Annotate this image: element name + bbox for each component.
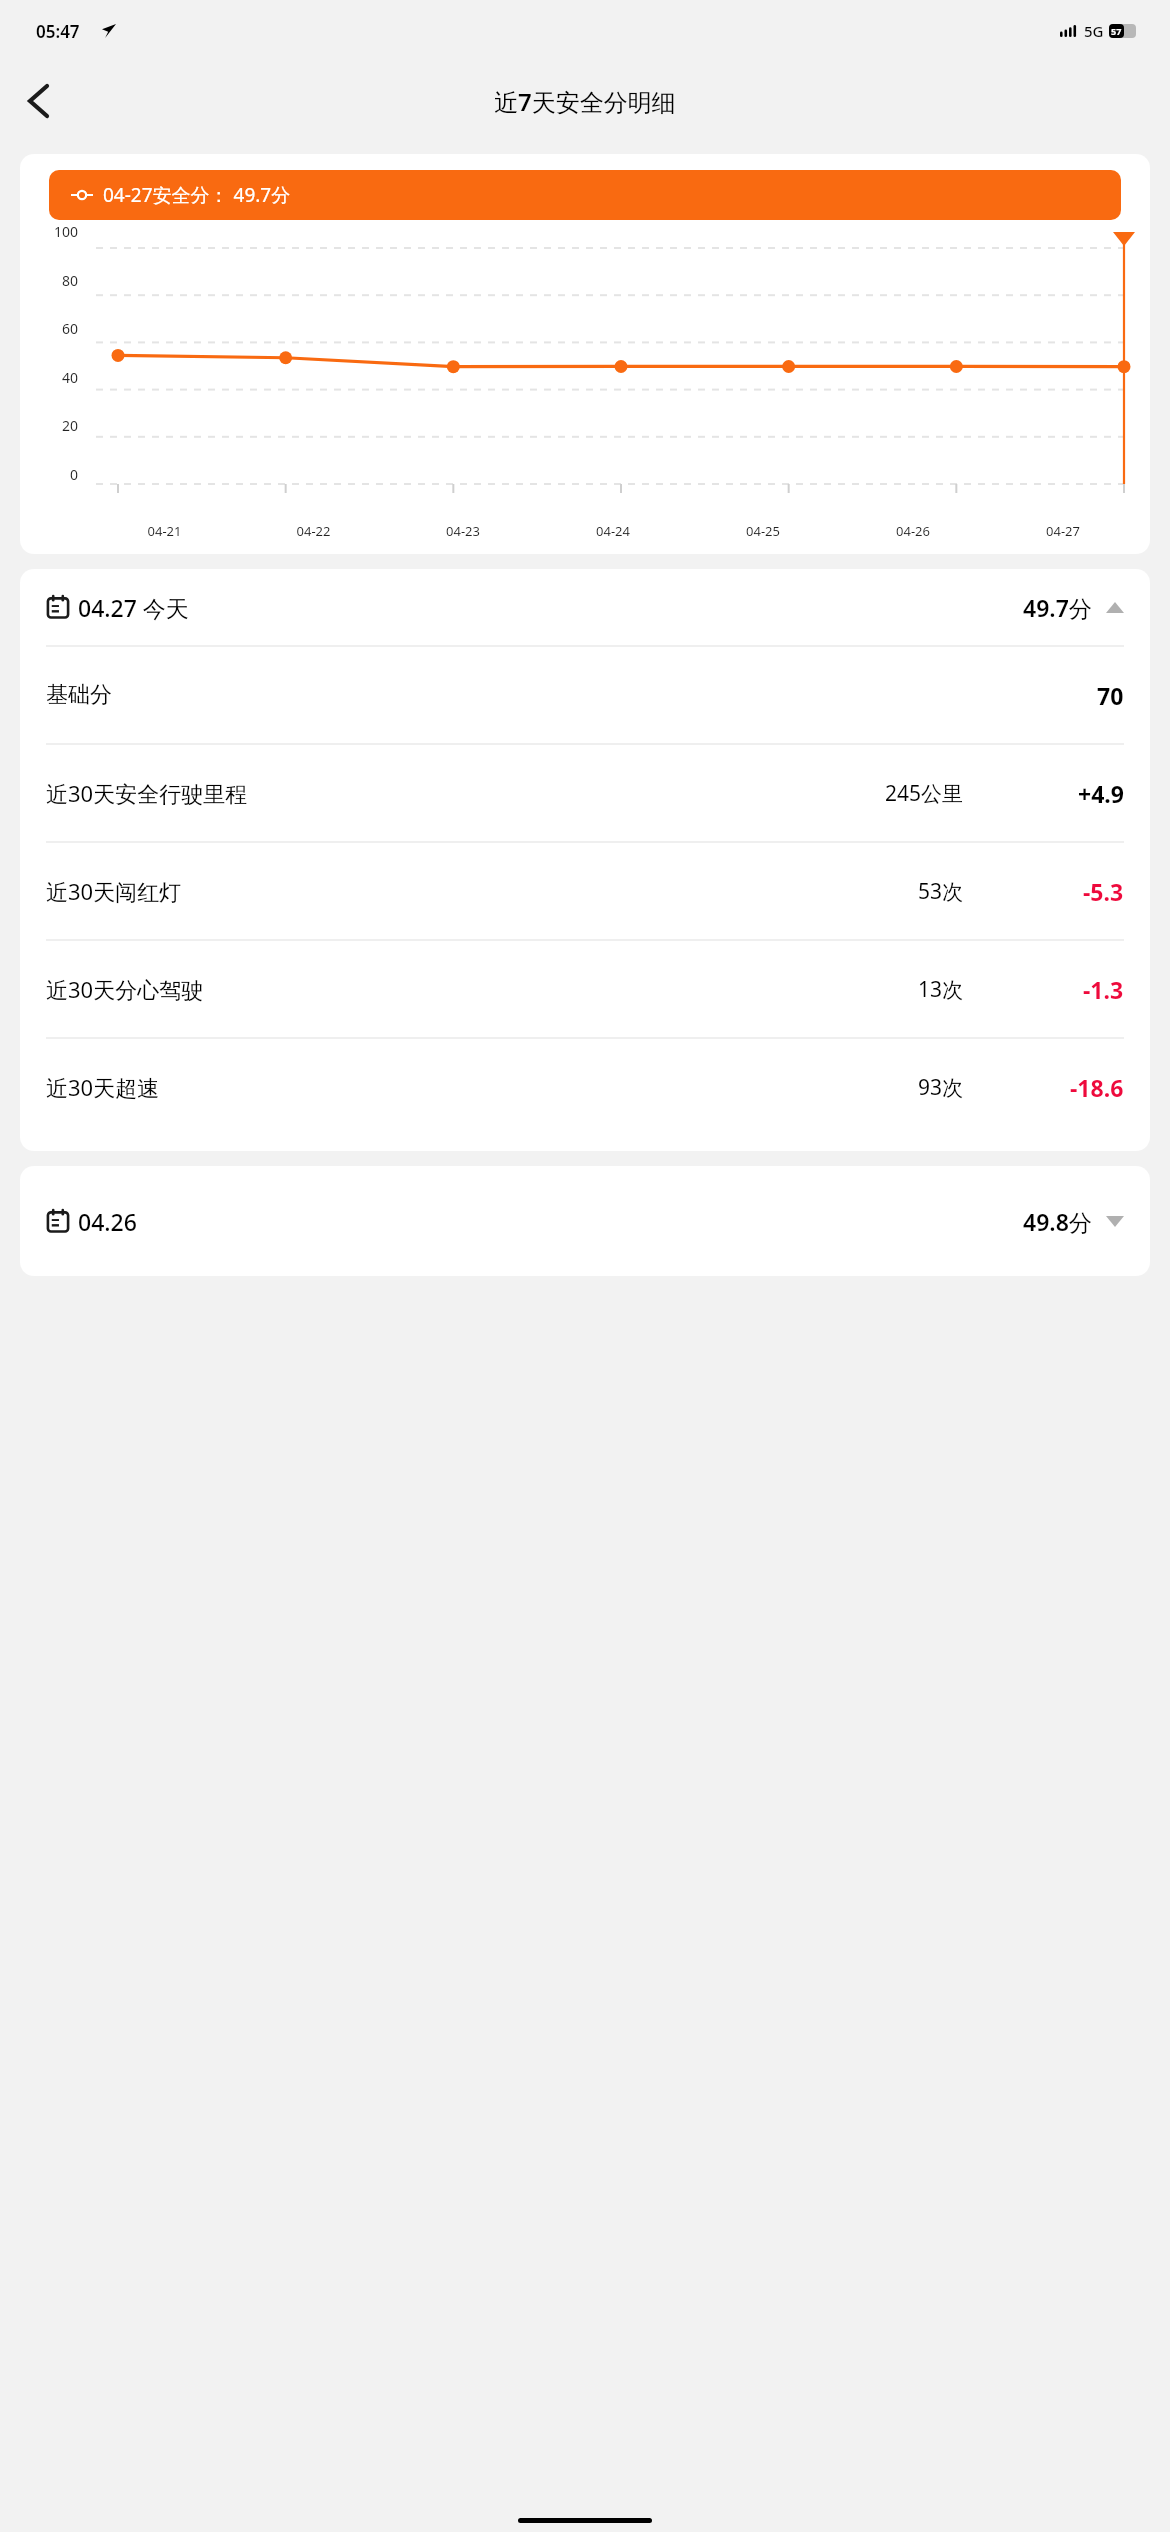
staticText: 13次 xyxy=(918,975,964,1004)
staticText: -18.6 xyxy=(1070,1072,1124,1103)
staticText: -1.3 xyxy=(1083,974,1124,1005)
staticText: 49.8分 xyxy=(1023,1206,1092,1237)
button[interactable]: 基础分 xyxy=(20,647,1150,743)
button[interactable]: 近30天超速 xyxy=(20,1039,1150,1135)
staticText: 04-27 xyxy=(988,522,1138,540)
staticText: 20 xyxy=(30,416,78,435)
staticText: -5.3 xyxy=(1083,876,1124,907)
staticText: 0 xyxy=(30,465,78,484)
staticText: 04.27 今天 xyxy=(78,592,189,623)
button[interactable]: Back xyxy=(12,75,64,127)
staticText: 100 xyxy=(30,222,78,241)
staticText: 05:47 xyxy=(36,20,80,43)
staticText: 基础分 xyxy=(46,681,112,709)
staticText: 245公里 xyxy=(885,779,964,808)
staticText: 04-23 xyxy=(388,522,538,540)
staticText: 近30天分心驾驶 xyxy=(46,974,204,1004)
staticText: 70 xyxy=(1097,680,1124,711)
staticText: 04-22 xyxy=(239,522,388,540)
staticText: 57 xyxy=(1111,25,1122,37)
staticText: 近30天闯红灯 xyxy=(46,876,182,906)
staticText: 40 xyxy=(30,368,78,387)
button[interactable]: 04.26 xyxy=(20,1166,1150,1276)
staticText: 5G xyxy=(1084,21,1104,41)
staticText: 04-24 xyxy=(538,522,688,540)
staticText: 04.26 xyxy=(78,1206,137,1237)
staticText: 近30天超速 xyxy=(46,1072,160,1102)
button[interactable]: 04-27安全分： 49.7分 xyxy=(49,170,1121,220)
staticText: 93次 xyxy=(918,1073,964,1102)
staticText: 近30天安全行驶里程 xyxy=(46,778,248,808)
staticText: 04-25 xyxy=(688,522,838,540)
staticText: 04-26 xyxy=(838,522,988,540)
button[interactable]: 近30天安全行驶里程 xyxy=(20,745,1150,841)
staticText: 53次 xyxy=(918,877,964,906)
button[interactable]: 近30天分心驾驶 xyxy=(20,941,1150,1037)
staticText: 04-21 xyxy=(90,522,239,540)
staticText: +4.9 xyxy=(1078,778,1124,809)
button[interactable]: 近30天闯红灯 xyxy=(20,843,1150,939)
staticText: 60 xyxy=(30,319,78,338)
staticText: 近7天安全分明细 xyxy=(494,85,676,118)
button[interactable]: 04.27 今天 xyxy=(20,569,1150,645)
staticText: 80 xyxy=(30,271,78,290)
staticText: 04-27安全分： 49.7分 xyxy=(103,182,291,208)
staticText: 49.7分 xyxy=(1023,592,1092,623)
